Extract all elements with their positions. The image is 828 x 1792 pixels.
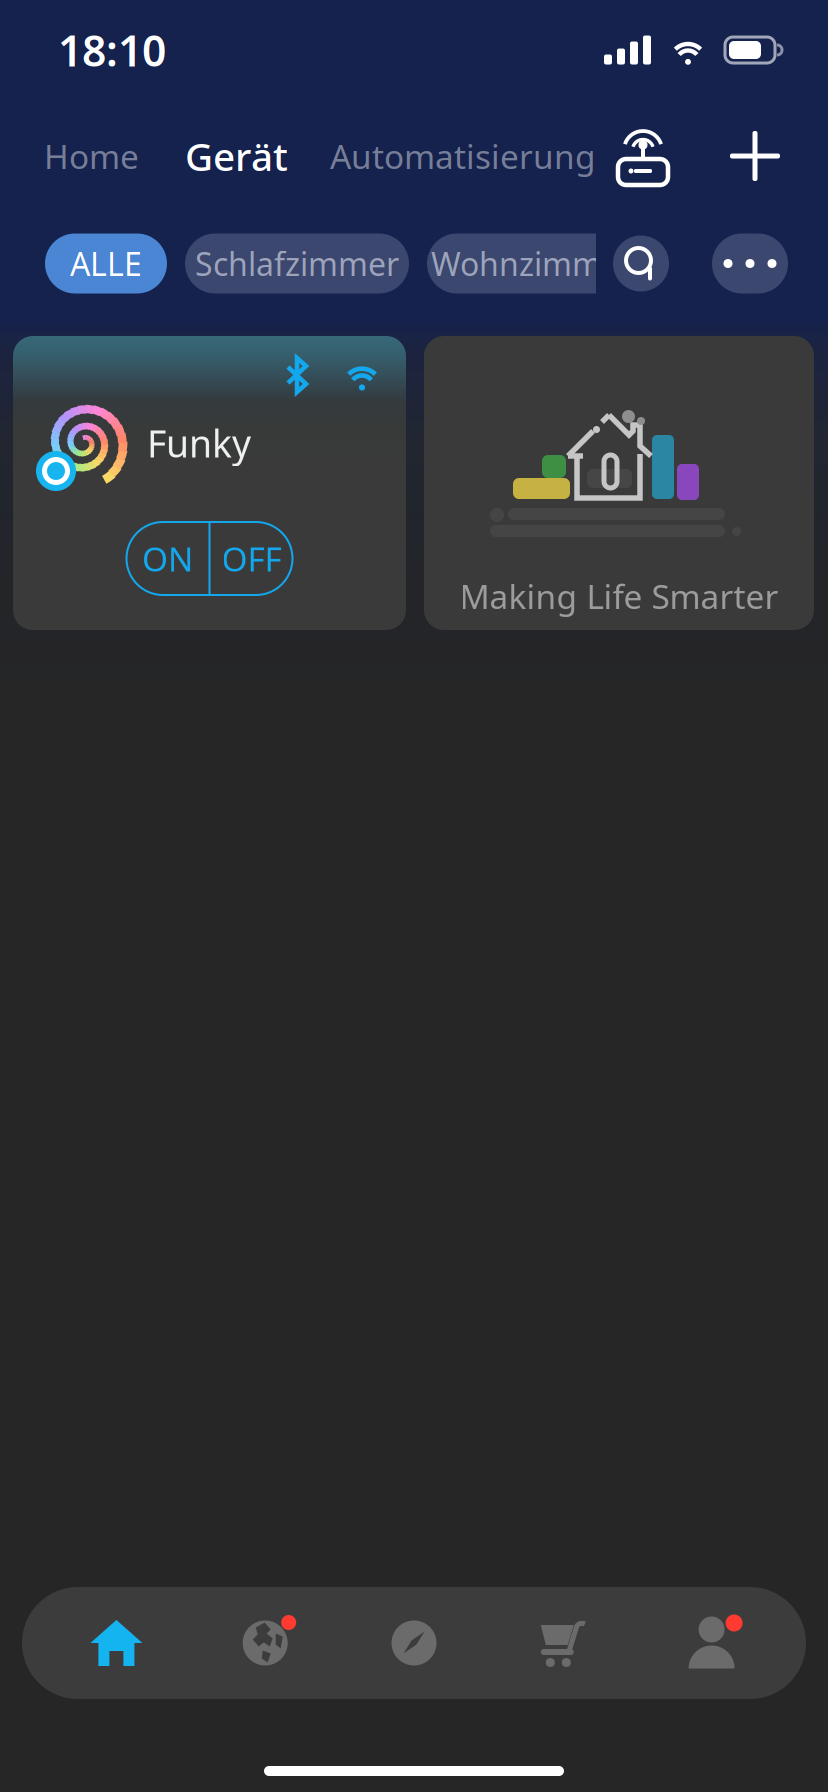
button[interactable]: More: [712, 233, 788, 293]
staticText: Schlafzimmer: [195, 242, 399, 285]
button[interactable]: Explore: [340, 1613, 488, 1673]
button[interactable]: OFF: [210, 522, 292, 595]
button[interactable]: Profile: [637, 1613, 786, 1673]
button[interactable]: Wohnzimmer: [427, 233, 637, 293]
staticText: Making Life Smarter: [459, 574, 778, 618]
button[interactable]: Schlafzimmer: [185, 233, 409, 293]
button[interactable]: Home: [44, 121, 139, 191]
staticText: OFF: [221, 536, 281, 581]
staticText: Funky: [147, 418, 251, 468]
staticText: ON: [142, 536, 193, 581]
staticText: Gerät: [185, 130, 288, 182]
staticText: Wohnzimmer: [431, 242, 633, 285]
staticText: 18:10: [58, 22, 166, 78]
button[interactable]: Automatisierung: [330, 121, 596, 191]
button[interactable]: Shop: [488, 1613, 637, 1673]
button[interactable]: Gateway: [612, 121, 674, 191]
staticText: Automatisierung: [330, 134, 596, 178]
button[interactable]: Gerät: [185, 121, 288, 191]
button[interactable]: Add device: [724, 121, 786, 191]
button[interactable]: Search: [613, 235, 669, 291]
button[interactable]: ON: [126, 522, 208, 595]
staticText: Home: [44, 134, 139, 178]
button[interactable]: Discover: [191, 1613, 340, 1673]
button[interactable]: ALLE: [45, 233, 167, 293]
staticText: ALLE: [70, 242, 142, 285]
button[interactable]: Home: [42, 1613, 191, 1673]
